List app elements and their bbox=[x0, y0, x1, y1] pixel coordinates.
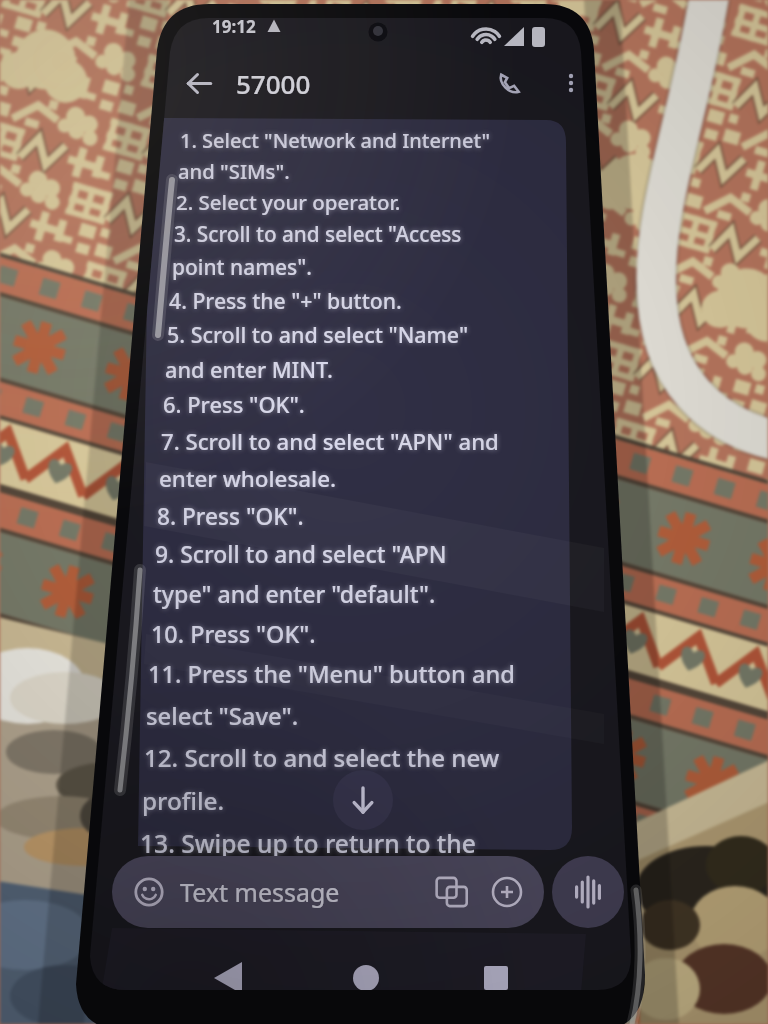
staticText: 7. Scroll to and select "APN" and bbox=[161, 426, 499, 456]
button[interactable]: Home bbox=[338, 952, 394, 1008]
staticText: 8. Press "OK". bbox=[157, 501, 304, 532]
staticText: 10. Press "OK". bbox=[151, 618, 316, 650]
staticText: 14. Your phone has been bbox=[136, 926, 431, 960]
staticText: configured. bbox=[128, 962, 265, 996]
staticText: 6. Press "OK". bbox=[163, 390, 305, 420]
staticText: 3. Scroll to and select "Access bbox=[174, 220, 462, 248]
staticText: 7. Scroll to and select "APN" and bbox=[161, 426, 499, 456]
staticText: select "Save". bbox=[146, 699, 299, 732]
staticText: 9. Scroll to and select "APN bbox=[155, 539, 447, 570]
staticText: 9. Scroll to and select "APN bbox=[155, 539, 447, 570]
staticText: and enter MINT. bbox=[165, 355, 333, 385]
button[interactable]: Back bbox=[200, 952, 256, 1008]
staticText: enter wholesale. bbox=[159, 463, 337, 494]
staticText: 3. Scroll to and select "Access bbox=[174, 220, 462, 248]
staticText: 19:12 bbox=[212, 15, 256, 38]
button[interactable]: Recents bbox=[468, 952, 524, 1008]
staticText: 5. Scroll to and select "Name" bbox=[167, 320, 469, 349]
button[interactable]: Back bbox=[178, 62, 220, 104]
staticText: profile. bbox=[142, 784, 225, 817]
staticText: 11. Press the "Menu" button and bbox=[148, 658, 515, 690]
staticText: 2. Select your operator. bbox=[176, 188, 401, 216]
button[interactable]: Call bbox=[488, 62, 530, 104]
staticText: enter wholesale. bbox=[159, 463, 337, 494]
staticText: point names". bbox=[172, 253, 312, 282]
button[interactable]: Add attachment bbox=[492, 877, 522, 907]
staticText: type" and enter "default". bbox=[153, 578, 436, 610]
staticText: 1. Select "Network and Internet" bbox=[180, 127, 491, 154]
staticText: and "SIMs". bbox=[178, 157, 290, 185]
staticText: 8. Press "OK". bbox=[157, 501, 304, 532]
button[interactable]: Attach image bbox=[436, 876, 468, 908]
button[interactable]: Text message bbox=[112, 856, 544, 928]
staticText: 12. Scroll to and select the new bbox=[144, 741, 500, 774]
staticText: Text message bbox=[180, 875, 340, 909]
staticText: 12. Scroll to and select the new bbox=[144, 741, 500, 774]
staticText: profile. bbox=[142, 784, 225, 817]
button[interactable]: More options bbox=[552, 64, 590, 102]
staticText: 2. Select your operator. bbox=[176, 188, 401, 216]
staticText: type" and enter "default". bbox=[153, 578, 436, 610]
staticText: 11. Press the "Menu" button and bbox=[148, 658, 515, 690]
staticText: and "SIMs". bbox=[178, 157, 290, 185]
staticText: point names". bbox=[172, 253, 312, 282]
staticText: 5. Scroll to and select "Name" bbox=[167, 320, 469, 349]
staticText: 6. Press "OK". bbox=[163, 390, 305, 420]
staticText: and enter MINT. bbox=[165, 355, 333, 385]
button[interactable]: Scroll to bottom bbox=[333, 770, 393, 830]
staticText: 4. Press the "+" button. bbox=[169, 286, 402, 315]
staticText: 13. Swipe up to return to the bbox=[140, 827, 476, 861]
staticText: 4. Press the "+" button. bbox=[169, 286, 402, 315]
staticText: 10. Press "OK". bbox=[151, 618, 316, 650]
staticText: 13. Swipe up to return to the bbox=[140, 827, 476, 861]
staticText: 1. Select "Network and Internet" bbox=[180, 127, 491, 154]
staticText: select "Save". bbox=[146, 699, 299, 732]
button[interactable]: Voice input bbox=[552, 856, 624, 928]
staticText: 57000 bbox=[236, 66, 311, 101]
